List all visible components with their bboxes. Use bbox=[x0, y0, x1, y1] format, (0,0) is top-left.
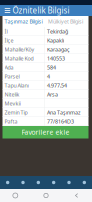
button[interactable]: Recents bbox=[0, 189, 31, 202]
staticText: Mahalle Kod bbox=[4, 55, 33, 62]
button[interactable]: Home bbox=[31, 189, 61, 202]
staticText: Karaağaç bbox=[47, 46, 70, 53]
staticText: Tapu Alanı bbox=[4, 82, 28, 89]
staticText: İlçe bbox=[4, 37, 13, 44]
button[interactable]: Map tool bbox=[31, 176, 46, 189]
staticText: Taşınmaz Bilgisi bbox=[4, 18, 42, 25]
staticText: 140553 bbox=[47, 55, 65, 62]
button[interactable]: Map tool bbox=[15, 176, 31, 189]
staticText: Ada bbox=[4, 64, 13, 71]
button[interactable]: Mülkiyet Bilgisi bbox=[44, 16, 86, 27]
staticText: Mahalle/Köy bbox=[4, 46, 34, 53]
staticText: Mevkii bbox=[4, 100, 20, 107]
staticText: Arsa bbox=[47, 91, 58, 98]
staticText: Pafta bbox=[4, 118, 17, 125]
button[interactable]: Map tool bbox=[0, 176, 15, 189]
staticText: Parsel bbox=[4, 73, 19, 80]
staticText: Öznitelik Bilgisi bbox=[12, 5, 69, 16]
staticText: Tekirdağ bbox=[47, 28, 68, 35]
staticText: Nitelik bbox=[4, 91, 19, 98]
button[interactable]: Back bbox=[61, 189, 92, 202]
staticText: 4 bbox=[47, 73, 50, 80]
button[interactable]: Taşınmaz Bilgisi bbox=[2, 16, 44, 27]
staticText: Kapaklı bbox=[47, 37, 64, 44]
button[interactable]: Map tool bbox=[77, 176, 92, 189]
staticText: 4.977,54 bbox=[47, 82, 67, 89]
button[interactable]: Map tool bbox=[61, 176, 77, 189]
button[interactable]: Favorilere ekle bbox=[2, 126, 88, 138]
staticText: İl bbox=[4, 28, 7, 35]
staticText: Favorilere ekle bbox=[21, 128, 69, 137]
staticText: Ana Taşınmaz bbox=[47, 109, 81, 116]
staticText: 584 bbox=[47, 64, 56, 71]
button[interactable]: Map tool bbox=[46, 176, 61, 189]
staticText: 77/8164D3 bbox=[47, 118, 74, 125]
staticText: Zemin Tip bbox=[4, 109, 27, 116]
staticText: Mülkiyet Bilgisi bbox=[48, 18, 83, 25]
button[interactable]: Menu bbox=[2, 5, 12, 16]
